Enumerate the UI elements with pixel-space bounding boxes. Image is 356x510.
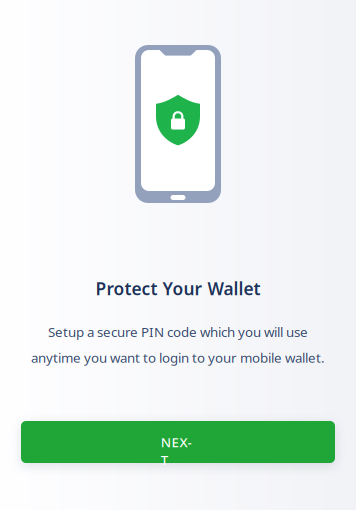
button[interactable]: NEXT [21, 421, 335, 463]
staticText: Setup a secure PIN code which you will u… [48, 323, 308, 341]
staticText: anytime you want to login to your mobile… [31, 349, 325, 366]
staticText: Protect Your Wallet [95, 277, 260, 300]
staticText: NEXT [161, 433, 195, 451]
